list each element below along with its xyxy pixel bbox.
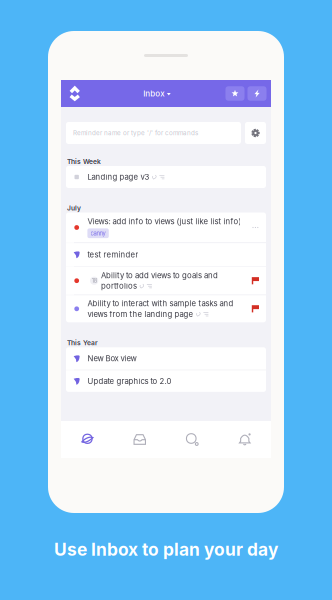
staticText: Update graphics to 2.0 xyxy=(87,376,171,386)
button[interactable]: Home xyxy=(61,421,113,458)
staticText: July xyxy=(67,204,81,212)
staticText: Ability to add views to goals and xyxy=(101,271,218,280)
button[interactable]: Quick actions xyxy=(247,86,266,101)
staticText: Views: add info to views (just like list… xyxy=(87,217,241,226)
staticText: Use Inbox to plan your day xyxy=(54,539,278,560)
staticText: Landing page v3 xyxy=(87,172,149,182)
staticText: This Year xyxy=(67,339,98,347)
button[interactable]: Inbox xyxy=(143,80,171,107)
button[interactable]: Landing page v3 xyxy=(66,166,266,188)
button[interactable]: ClickUp home xyxy=(61,80,88,107)
staticText: views from the landing page xyxy=(87,309,193,319)
button[interactable]: Update graphics to 2.0 xyxy=(66,370,266,392)
button[interactable]: Ability to interact with sample tasks an… xyxy=(66,295,266,322)
button[interactable]: Settings xyxy=(245,122,266,144)
staticText: New Box view xyxy=(87,354,136,363)
staticText: canny xyxy=(91,230,106,237)
button[interactable]: Favorites xyxy=(225,86,244,101)
staticText: Reminder name or type '/' for commands xyxy=(73,129,198,137)
button[interactable]: 18 xyxy=(66,267,266,295)
button[interactable]: test reminder xyxy=(66,243,266,266)
staticText: 18 xyxy=(92,277,97,284)
button[interactable]: Search xyxy=(166,421,218,458)
button[interactable]: Reminder name or type '/' for commands xyxy=(66,122,241,144)
staticText: portfolios xyxy=(101,281,137,291)
staticText: This Week xyxy=(67,157,101,166)
button[interactable]: Views: add info to views (just like list… xyxy=(66,212,266,242)
button[interactable]: Notifications xyxy=(218,421,271,458)
button[interactable]: New Box view xyxy=(66,347,266,370)
button[interactable]: Inbox xyxy=(113,421,166,458)
staticText: test reminder xyxy=(87,250,138,259)
staticText: Ability to interact with sample tasks an… xyxy=(87,299,233,308)
staticText: Inbox xyxy=(143,89,164,98)
